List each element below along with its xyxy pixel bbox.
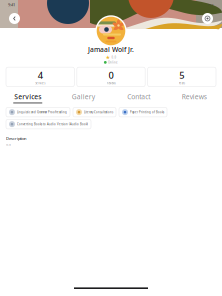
button[interactable]: Literary Consultations	[73, 107, 116, 117]
staticText: 4	[38, 69, 43, 81]
staticText: 9:41	[8, 2, 15, 7]
staticText: Services	[14, 92, 41, 101]
staticText: Linguistic and Grammar Proofreading	[17, 110, 67, 114]
staticText: Paper Printing of Books	[130, 110, 164, 114]
staticText: test	[6, 143, 11, 146]
staticText: Description	[6, 136, 26, 141]
staticText: Years	[179, 81, 185, 85]
staticText: 0	[108, 69, 113, 81]
button[interactable]: Contact	[111, 92, 166, 103]
staticText: Reviews	[182, 92, 207, 101]
staticText: 0.0	[112, 56, 117, 59]
button[interactable]: Converting Books to Audio Version (Audio…	[6, 119, 91, 129]
staticText: Converting Books to Audio Version (Audio…	[17, 122, 88, 126]
staticText: Online	[108, 61, 118, 64]
button[interactable]: 4	[6, 67, 74, 87]
button[interactable]: Linguistic and Grammar Proofreading	[6, 107, 70, 117]
staticText: Services	[35, 81, 45, 85]
button[interactable]: Reviews	[166, 92, 222, 103]
staticText: Contact	[127, 92, 150, 101]
staticText: Literary Consultations	[84, 110, 113, 114]
button[interactable]: Paper Printing of Books	[119, 107, 167, 117]
button[interactable]: 0	[77, 67, 145, 87]
staticText: ★	[105, 54, 110, 60]
button[interactable]: 5	[148, 67, 216, 87]
staticText: Gallery	[72, 92, 95, 101]
staticText: Reviews	[106, 81, 115, 85]
staticText: 5	[179, 69, 184, 81]
button[interactable]: Services	[0, 92, 55, 103]
button[interactable]: Back	[9, 13, 20, 24]
button[interactable]: Gallery	[55, 92, 111, 103]
staticText: •••	[208, 2, 214, 7]
staticText: Jamaal Wolf Jr.	[88, 45, 134, 54]
button[interactable]: Share	[202, 13, 213, 24]
